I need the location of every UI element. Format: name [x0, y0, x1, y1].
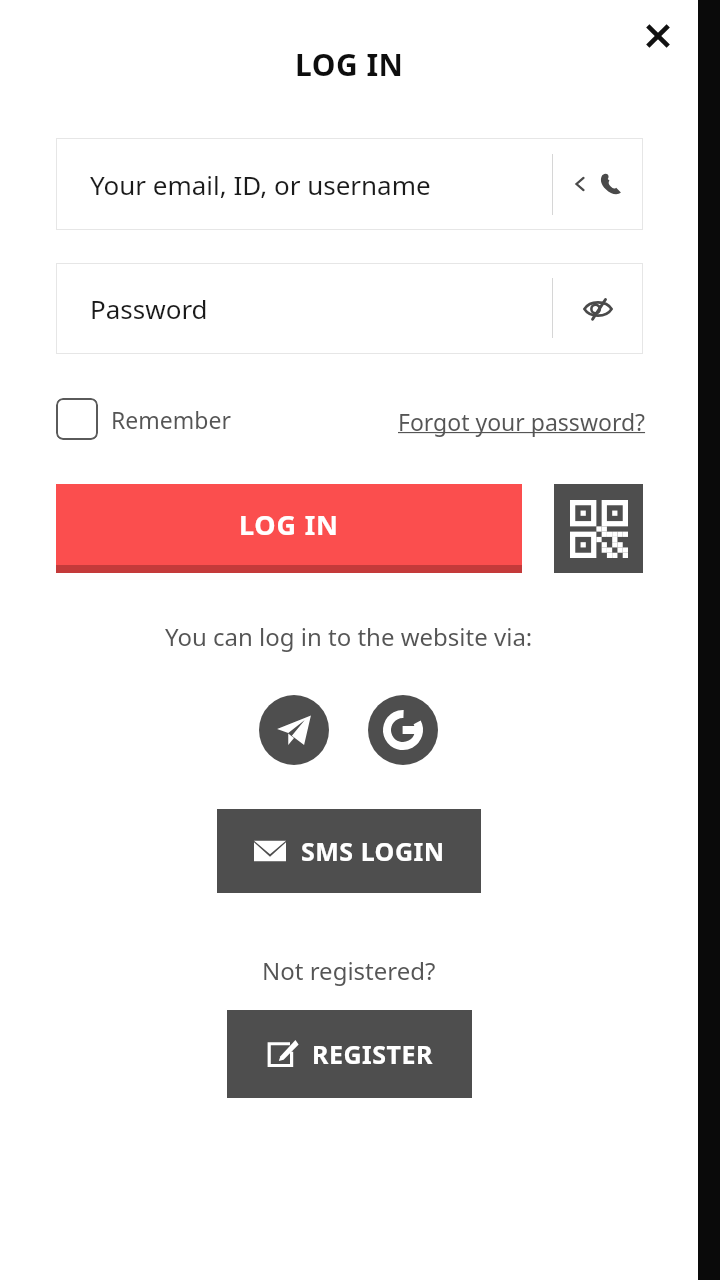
button[interactable]: SMS LOGIN	[217, 809, 481, 893]
button[interactable]: Your email, ID, or username	[56, 138, 643, 230]
button[interactable]: Forgot your password?	[396, 402, 648, 441]
staticText: REGISTER	[312, 1037, 433, 1071]
staticText: LOG IN	[295, 44, 404, 85]
staticText: Not registered?	[262, 954, 436, 987]
button[interactable]: Password	[56, 263, 643, 354]
button[interactable]: REGISTER	[227, 1010, 472, 1098]
staticText: You can log in to the website via:	[165, 620, 533, 653]
button[interactable]: Remember	[56, 398, 235, 440]
button[interactable]: Log in with Google	[368, 695, 438, 765]
staticText: Remember	[111, 404, 231, 435]
button[interactable]: Log in with Telegram	[259, 695, 329, 765]
staticText: Forgot your password?	[398, 406, 646, 437]
button[interactable]: Log in with QR code	[554, 484, 643, 573]
staticText: LOG IN	[239, 506, 339, 543]
staticText: Your email, ID, or username	[90, 167, 431, 202]
other: Show password	[553, 263, 643, 354]
staticText: Password	[90, 291, 208, 326]
button[interactable]: Close	[628, 6, 688, 66]
button[interactable]: LOG IN	[56, 484, 522, 573]
other: Switch to phone number login	[553, 138, 643, 230]
staticText: SMS LOGIN	[301, 834, 445, 868]
